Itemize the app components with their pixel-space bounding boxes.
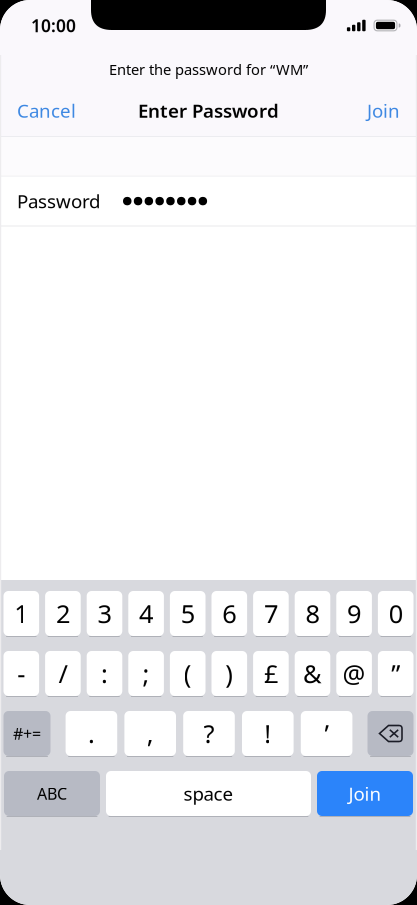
- staticText: 3: [97, 597, 111, 630]
- staticText: 1: [14, 597, 28, 630]
- button[interactable]: 8: [295, 591, 330, 637]
- staticText: ”: [391, 657, 400, 690]
- staticText: Enter Password: [138, 98, 279, 123]
- button[interactable]: 4: [128, 591, 164, 637]
- staticText: (: [184, 657, 192, 690]
- staticText: ,: [147, 717, 154, 750]
- staticText: #+=: [13, 723, 41, 744]
- button[interactable]: 3: [87, 591, 122, 637]
- button[interactable]: !: [242, 711, 294, 757]
- staticText: Join: [348, 781, 381, 806]
- button[interactable]: 0: [378, 591, 413, 637]
- button[interactable]: ”: [378, 651, 413, 697]
- staticText: Join: [367, 98, 400, 123]
- staticText: Enter the password for “WM”: [109, 59, 308, 79]
- button[interactable]: Cancel: [0, 90, 127, 130]
- staticText: 10:00: [31, 14, 76, 37]
- button[interactable]: @: [336, 651, 372, 697]
- button[interactable]: ABC: [4, 771, 100, 817]
- button[interactable]: &: [295, 651, 330, 697]
- staticText: ): [225, 657, 233, 690]
- staticText: 6: [222, 597, 236, 630]
- button[interactable]: ,: [124, 711, 176, 757]
- button[interactable]: 5: [170, 591, 205, 637]
- staticText: !: [264, 717, 271, 750]
- button[interactable]: Password: [0, 177, 417, 226]
- staticText: 2: [56, 597, 70, 630]
- staticText: @: [343, 657, 366, 690]
- button[interactable]: ): [211, 651, 247, 697]
- button[interactable]: 7: [253, 591, 289, 637]
- button[interactable]: Join: [317, 771, 413, 817]
- button[interactable]: /: [45, 651, 81, 697]
- staticText: -: [17, 657, 25, 690]
- button[interactable]: Delete: [367, 711, 413, 757]
- button[interactable]: 2: [45, 591, 81, 637]
- button[interactable]: .: [66, 711, 117, 757]
- button[interactable]: #+=: [3, 711, 50, 757]
- button[interactable]: ?: [183, 711, 235, 757]
- button[interactable]: £: [253, 651, 289, 697]
- staticText: &: [303, 657, 322, 690]
- staticText: ;: [143, 657, 150, 690]
- staticText: Cancel: [17, 98, 76, 123]
- button[interactable]: -: [3, 651, 39, 697]
- button[interactable]: space: [106, 771, 311, 817]
- staticText: 8: [305, 597, 319, 630]
- button[interactable]: Join: [290, 90, 417, 130]
- staticText: ?: [203, 717, 214, 750]
- staticText: :: [101, 657, 108, 690]
- staticText: .: [88, 717, 95, 750]
- button[interactable]: :: [87, 651, 122, 697]
- staticText: Password: [17, 189, 100, 213]
- staticText: ABC: [37, 783, 67, 804]
- button[interactable]: (: [170, 651, 205, 697]
- button[interactable]: 9: [336, 591, 372, 637]
- staticText: 5: [181, 597, 195, 630]
- staticText: 0: [389, 597, 403, 630]
- staticText: /: [58, 657, 67, 690]
- button[interactable]: 1: [3, 591, 39, 637]
- staticText: space: [183, 781, 233, 806]
- button[interactable]: ’: [301, 711, 352, 757]
- button[interactable]: ;: [128, 651, 164, 697]
- staticText: 7: [264, 597, 278, 630]
- staticText: ’: [325, 717, 329, 750]
- staticText: £: [264, 657, 278, 690]
- button[interactable]: 6: [211, 591, 247, 637]
- staticText: 9: [347, 597, 361, 630]
- staticText: 4: [139, 597, 153, 630]
